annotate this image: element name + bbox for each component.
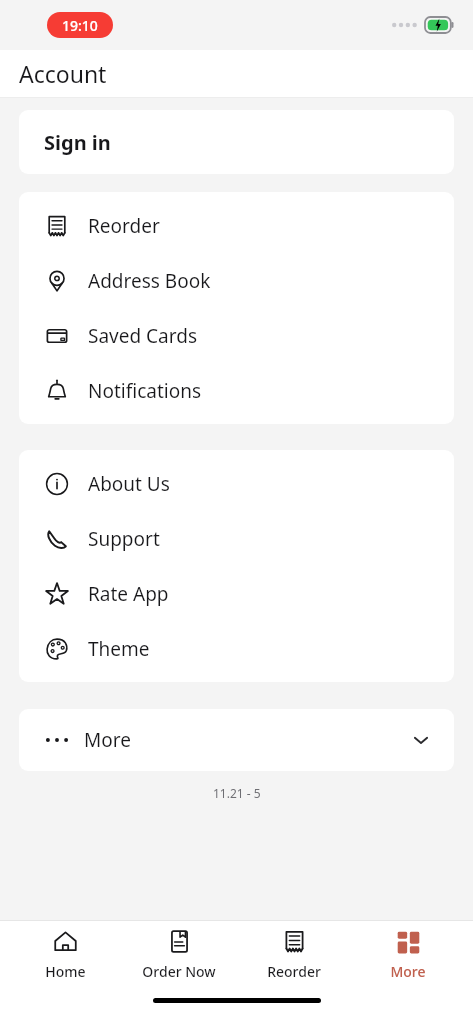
button[interactable]: About Us xyxy=(19,456,454,511)
staticText: Account xyxy=(19,58,107,89)
staticText: Support xyxy=(88,526,160,552)
button[interactable]: Sign in xyxy=(19,110,454,174)
button[interactable]: Reorder xyxy=(19,198,454,253)
staticText: About Us xyxy=(88,471,170,497)
button[interactable]: Home xyxy=(15,922,115,987)
button[interactable]: Saved Cards xyxy=(19,308,454,363)
staticText: 19:10 xyxy=(62,16,98,35)
staticText: Notifications xyxy=(88,378,202,404)
staticText: Home xyxy=(45,962,86,981)
staticText: More xyxy=(390,962,426,981)
button[interactable]: Address Book xyxy=(19,253,454,308)
staticText: Sign in xyxy=(44,129,111,156)
button[interactable]: More xyxy=(19,709,454,771)
staticText: Reorder xyxy=(88,213,160,239)
button[interactable]: Rate App xyxy=(19,566,454,621)
button[interactable]: Support xyxy=(19,511,454,566)
staticText: Rate App xyxy=(88,581,169,607)
button[interactable]: More xyxy=(358,922,458,987)
button[interactable]: Order Now xyxy=(129,922,229,987)
staticText: Saved Cards xyxy=(88,323,198,349)
staticText: 11.21 - 5 xyxy=(213,785,261,801)
button[interactable]: Theme xyxy=(19,621,454,676)
staticText: Theme xyxy=(88,636,150,662)
staticText: More xyxy=(84,727,131,753)
staticText: Address Book xyxy=(88,268,211,294)
button[interactable]: Notifications xyxy=(19,363,454,418)
staticText: Reorder xyxy=(267,962,321,981)
staticText: Order Now xyxy=(142,962,216,981)
button[interactable]: Reorder xyxy=(244,922,344,987)
